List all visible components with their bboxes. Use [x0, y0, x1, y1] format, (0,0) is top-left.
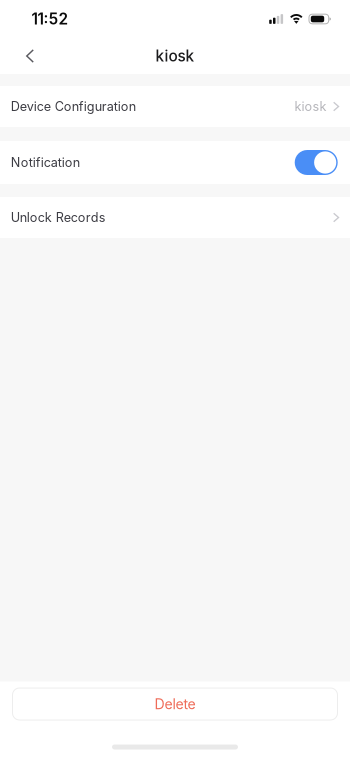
button[interactable]: Back	[6, 38, 54, 74]
button[interactable]: Delete	[12, 688, 337, 720]
button[interactable]: Unlock Records	[0, 197, 350, 238]
staticText: Delete	[154, 695, 195, 712]
button[interactable]: Notification	[295, 150, 338, 175]
button[interactable]: Device Configuration	[0, 86, 350, 127]
staticText: Notification	[11, 155, 80, 170]
staticText: kiosk	[155, 47, 194, 65]
staticText: Unlock Records	[11, 210, 106, 225]
staticText: Device Configuration	[11, 99, 136, 114]
staticText: kiosk	[294, 99, 326, 114]
staticText: 11:52	[31, 10, 68, 28]
